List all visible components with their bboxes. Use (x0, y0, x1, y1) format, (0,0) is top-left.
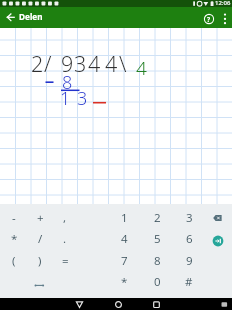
staticText: 9 (186, 253, 193, 269)
button[interactable]: * (111, 271, 137, 293)
staticText: 4 (105, 49, 118, 78)
staticText: 12:06 (215, 0, 231, 6)
staticText: / (38, 231, 43, 247)
button[interactable]: * (1, 228, 27, 250)
button[interactable]: / (27, 228, 53, 250)
staticText: * (11, 231, 18, 247)
staticText: 6 (186, 231, 193, 247)
staticText: \ (119, 49, 127, 78)
button[interactable] (147, 298, 166, 310)
button[interactable] (3, 12, 17, 24)
staticText: / (44, 49, 52, 78)
staticText: + (37, 210, 44, 226)
staticText: 9 (61, 49, 74, 78)
button[interactable]: ? (202, 12, 216, 26)
staticText: * (121, 274, 128, 290)
staticText: ? (207, 15, 211, 24)
staticText: 2 (31, 49, 44, 78)
staticText: 3 (77, 86, 88, 111)
button[interactable] (70, 298, 89, 310)
button[interactable]: 4 (111, 228, 137, 250)
button[interactable]: - (1, 207, 27, 229)
button[interactable]: 8 (144, 250, 170, 272)
staticText: 5 (154, 231, 161, 247)
staticText: . (63, 231, 67, 247)
button[interactable]: + (27, 207, 53, 229)
staticText: = (62, 253, 69, 269)
button[interactable]: = (52, 250, 78, 272)
staticText: 1 (60, 86, 71, 111)
button[interactable]: # (176, 271, 202, 293)
button[interactable]: 0 (144, 271, 170, 293)
staticText: 7 (121, 253, 128, 269)
staticText: 4 (121, 231, 128, 247)
button[interactable]: 9 (176, 250, 202, 272)
staticText: ) (38, 253, 42, 269)
staticText: 3 (74, 49, 87, 78)
button[interactable]: , (52, 207, 78, 229)
staticText: 0 (154, 274, 161, 290)
staticText: # (185, 274, 193, 290)
staticText: - (12, 210, 16, 226)
staticText: 4 (88, 49, 101, 78)
staticText: 8 (154, 253, 161, 269)
button[interactable]: . (52, 228, 78, 250)
button[interactable]: ) (27, 250, 53, 272)
button[interactable]: 6 (176, 228, 202, 250)
button[interactable]: 5 (144, 228, 170, 250)
button[interactable] (219, 12, 231, 26)
staticText: 3 (186, 210, 193, 226)
button[interactable]: 2 (144, 207, 170, 229)
staticText: 4 (136, 55, 147, 81)
staticText: , (63, 210, 67, 226)
staticText: 1 (121, 210, 128, 226)
staticText: ( (12, 253, 16, 269)
button[interactable]: 3 (176, 207, 202, 229)
button[interactable] (109, 298, 128, 310)
button[interactable] (206, 207, 230, 229)
button[interactable]: ( (1, 250, 27, 272)
staticText: Delen (19, 11, 43, 22)
staticText: 2 (154, 210, 161, 226)
button[interactable] (207, 230, 229, 252)
button[interactable]: 7 (111, 250, 137, 272)
button[interactable] (27, 275, 52, 295)
staticText: 8 (62, 70, 73, 95)
button[interactable]: 1 (111, 207, 137, 229)
